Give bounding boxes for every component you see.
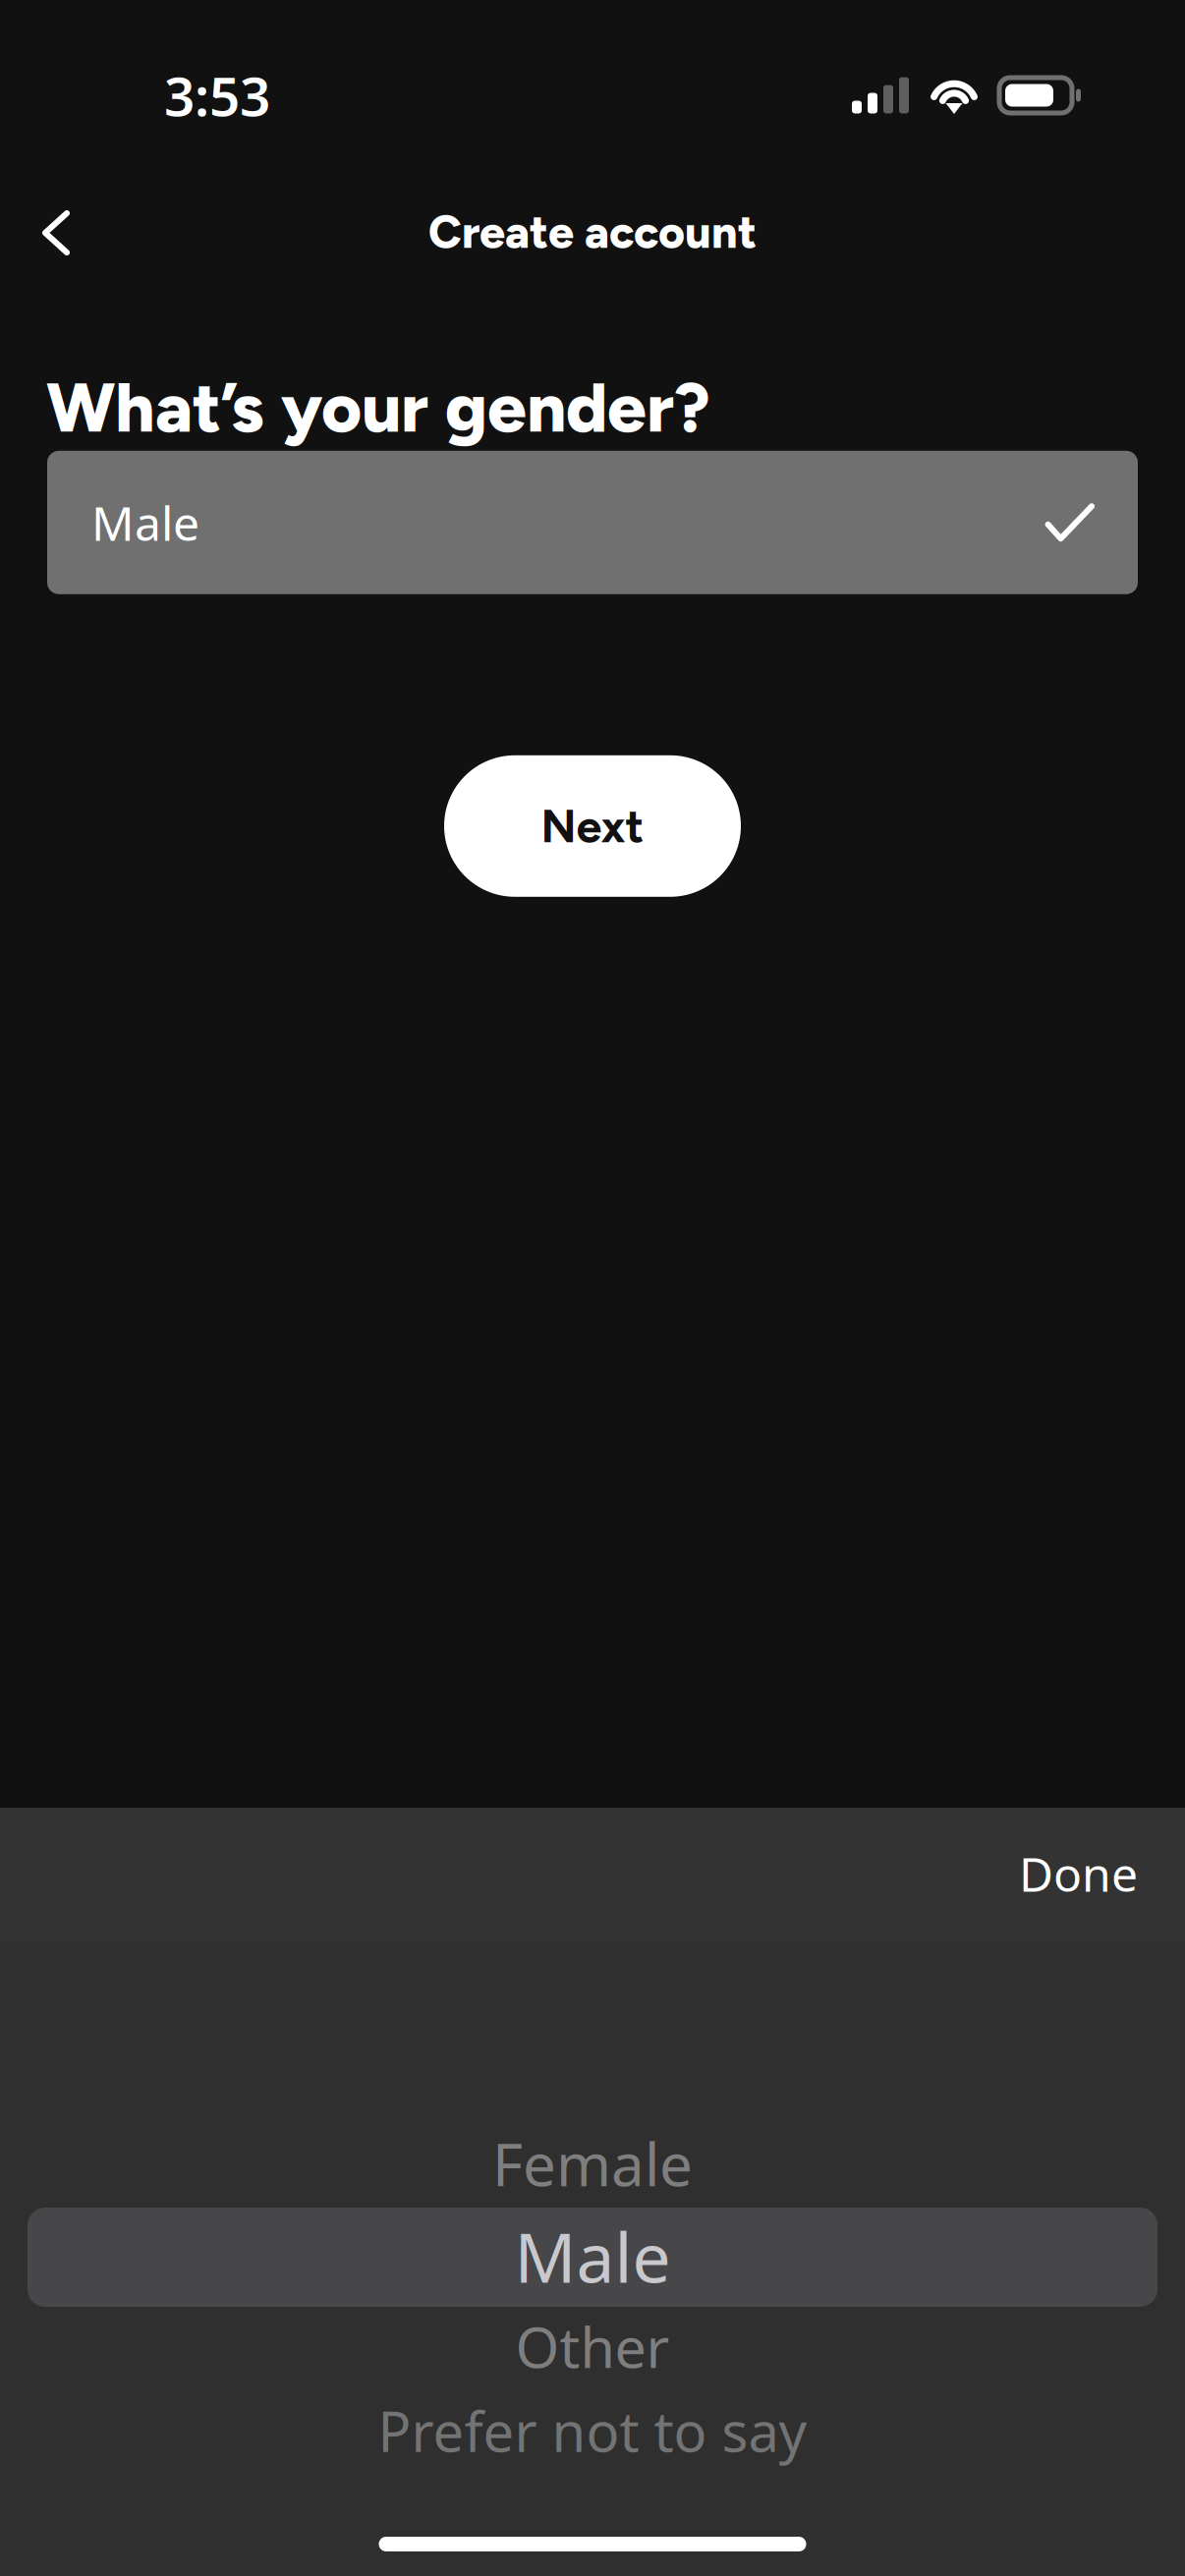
staticText: Male (514, 2211, 671, 2302)
staticText: 3:53 (164, 60, 270, 131)
button[interactable]: Male (0, 2210, 1185, 2303)
staticText: Create account (428, 205, 757, 259)
staticText: Done (1019, 1842, 1138, 1905)
button[interactable]: Male (47, 451, 1138, 594)
button[interactable]: Next (444, 755, 741, 897)
button[interactable]: Done (969, 1799, 1185, 1950)
button[interactable]: Prefer not to say (0, 2389, 1185, 2466)
staticText: Male (91, 491, 199, 554)
staticText: Prefer not to say (378, 2394, 807, 2467)
staticText: What’s your gender? (46, 365, 710, 449)
button[interactable]: Other (0, 2303, 1185, 2389)
staticText: Next (541, 799, 644, 854)
button[interactable]: Back (0, 187, 106, 277)
staticText: Other (515, 2309, 670, 2383)
staticText: Female (492, 2124, 693, 2203)
button[interactable]: Female (0, 2117, 1185, 2210)
